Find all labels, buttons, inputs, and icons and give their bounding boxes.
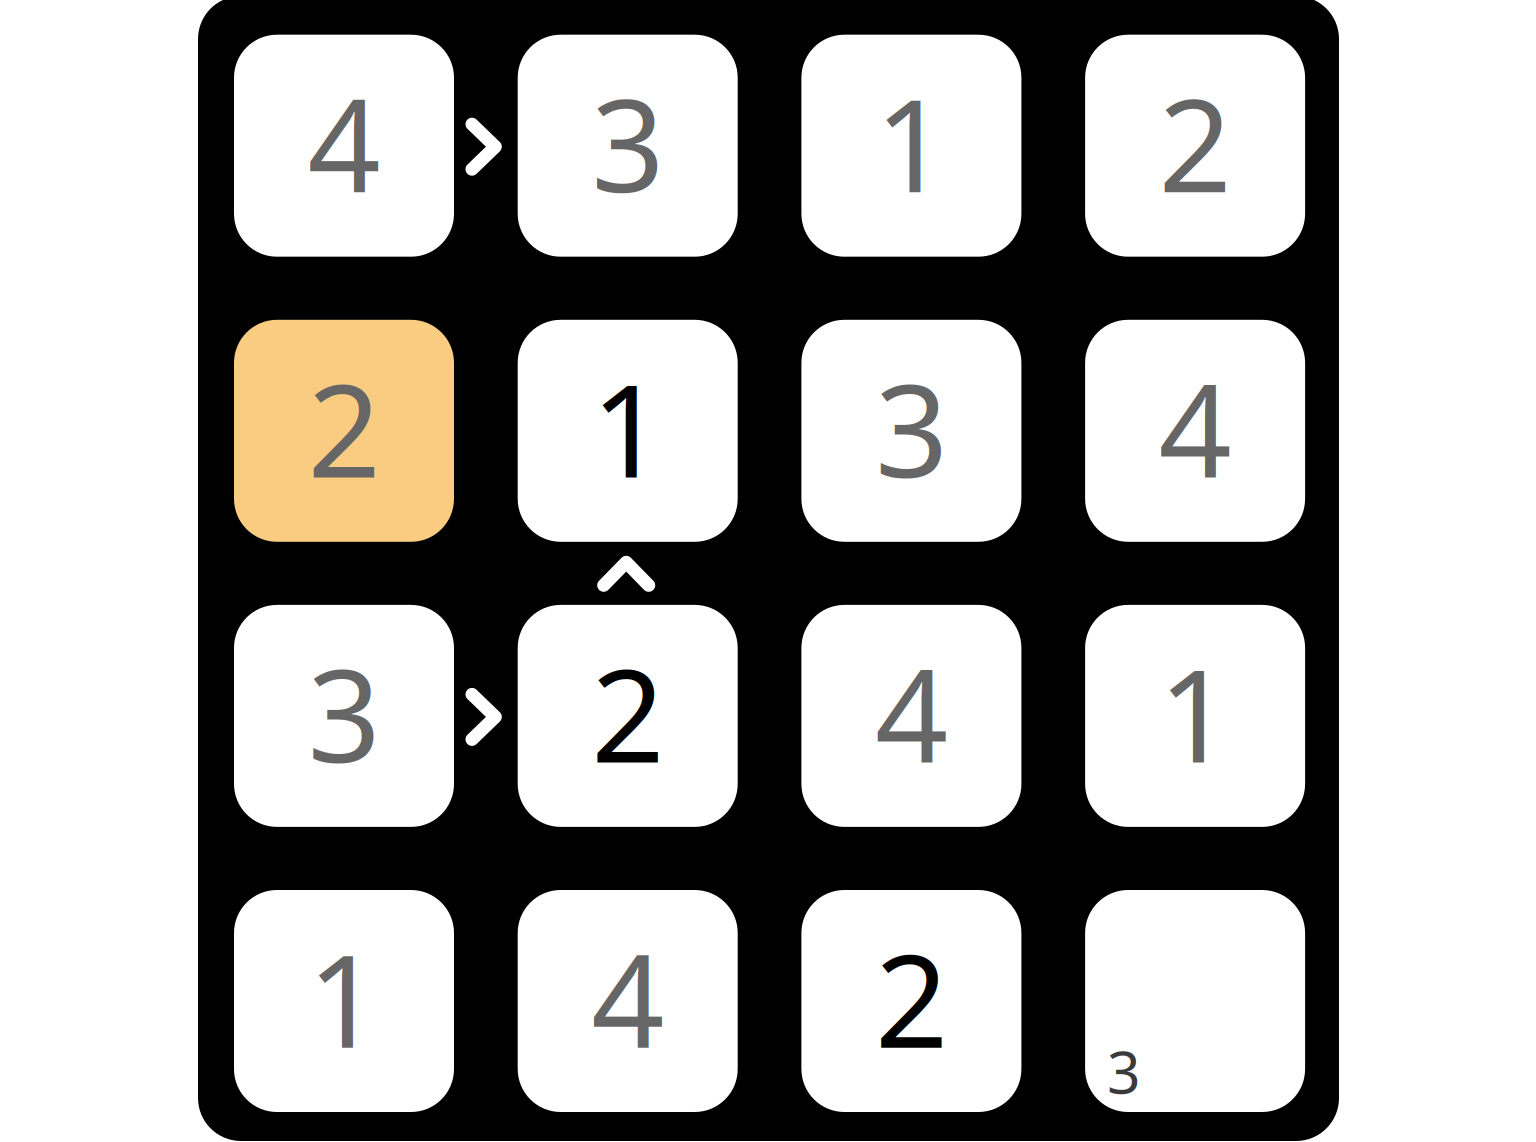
staticText: 1 xyxy=(875,58,948,228)
button[interactable]: Cell row 3 column 3, 4 xyxy=(801,605,1021,827)
button[interactable]: Cell row 4 column 2, 4 xyxy=(518,890,738,1112)
staticText: 4 xyxy=(1159,343,1232,513)
staticText: 1 xyxy=(307,913,380,1083)
button[interactable]: Cell row 2 column 3, 3 xyxy=(801,320,1021,542)
button[interactable]: Empty cell row 4 column 4 xyxy=(1085,890,1305,1112)
staticText: 3 xyxy=(591,58,664,228)
button[interactable]: Cell row 1 column 3, 1 xyxy=(801,35,1021,257)
staticText: 1 xyxy=(1159,628,1232,798)
staticText: 1 xyxy=(591,343,664,513)
staticText: 2 xyxy=(875,913,948,1083)
staticText: 4 xyxy=(875,628,948,798)
staticText: 2 xyxy=(1159,58,1232,228)
button[interactable]: Cell row 1 column 2, 3 xyxy=(518,35,738,257)
button[interactable]: Cell row 2 column 2, 1 xyxy=(518,320,738,542)
staticText: 3 xyxy=(307,628,380,798)
button[interactable]: Cell row 2 column 4, 4 xyxy=(1085,320,1305,542)
button[interactable]: Cell row 3 column 1, 3 xyxy=(234,605,454,827)
button[interactable]: Cell row 4 column 3, 2 xyxy=(801,890,1021,1112)
staticText: 4 xyxy=(307,58,380,228)
staticText: 3 xyxy=(1107,1032,1141,1110)
button[interactable]: Cell row 3 column 4, 1 xyxy=(1085,605,1305,827)
staticText: 3 xyxy=(875,343,948,513)
button[interactable]: Cell row 3 column 2, 2 xyxy=(518,605,738,827)
button[interactable]: Cell row 4 column 1, 1 xyxy=(234,890,454,1112)
button[interactable]: Cell row 2 column 1, 2 xyxy=(234,320,454,542)
staticText: 4 xyxy=(591,913,664,1083)
button[interactable]: Cell row 1 column 4, 2 xyxy=(1085,35,1305,257)
staticText: 2 xyxy=(307,343,380,513)
staticText: 2 xyxy=(591,628,664,798)
button[interactable]: Cell row 1 column 1, 4 xyxy=(234,35,454,257)
